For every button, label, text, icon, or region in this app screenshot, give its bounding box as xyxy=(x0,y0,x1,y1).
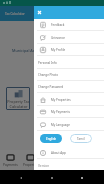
staticText: Property Tax Calculator xyxy=(7,99,30,109)
staticText: Grievance xyxy=(51,36,66,40)
button[interactable]: My Language xyxy=(34,118,104,131)
button[interactable]: Change Photo xyxy=(34,69,104,81)
staticText: My Payments xyxy=(51,110,70,114)
staticText: My Properties xyxy=(51,98,71,102)
staticText: Tamil xyxy=(77,137,85,141)
button[interactable]: Back xyxy=(14,171,27,184)
staticText: About App xyxy=(51,151,66,155)
staticText: Change Photo xyxy=(38,73,58,77)
staticText: Personal Info xyxy=(38,61,57,65)
staticText: My Language xyxy=(51,123,71,127)
button[interactable]: Change Password xyxy=(34,81,104,93)
button[interactable]: Grievance xyxy=(34,31,104,44)
staticText: Home xyxy=(47,163,57,167)
staticText: Properties xyxy=(23,163,39,167)
staticText: Tax Calculator xyxy=(5,12,25,16)
button[interactable]: English xyxy=(40,134,62,143)
button[interactable]: Home xyxy=(45,171,58,184)
staticText: Municipal Administration xyxy=(12,48,57,53)
button[interactable]: Payments xyxy=(0,154,20,167)
button[interactable]: Property Tax Calculator xyxy=(6,87,30,110)
button[interactable]: Home xyxy=(41,154,62,167)
button[interactable]: Recents xyxy=(75,171,88,184)
button[interactable]: Personal Info xyxy=(34,56,104,69)
button[interactable]: Close drawer xyxy=(35,8,44,17)
staticText: Version xyxy=(38,164,50,168)
staticText: Change Password xyxy=(38,85,64,89)
button[interactable]: More xyxy=(83,154,104,167)
button[interactable]: Feedback xyxy=(34,19,104,31)
staticText: Payments xyxy=(3,163,18,167)
button[interactable]: My Payments xyxy=(34,106,104,118)
button[interactable]: My Properties xyxy=(34,93,104,106)
button[interactable]: Tamil xyxy=(70,134,92,143)
staticText: Feedback xyxy=(51,23,65,27)
button[interactable]: Properties xyxy=(20,154,41,167)
staticText: English xyxy=(46,137,57,141)
button[interactable]: Services xyxy=(62,154,83,167)
button[interactable]: About App xyxy=(34,147,104,159)
staticText: My Profile xyxy=(51,48,66,52)
button[interactable]: My Profile xyxy=(34,44,104,56)
